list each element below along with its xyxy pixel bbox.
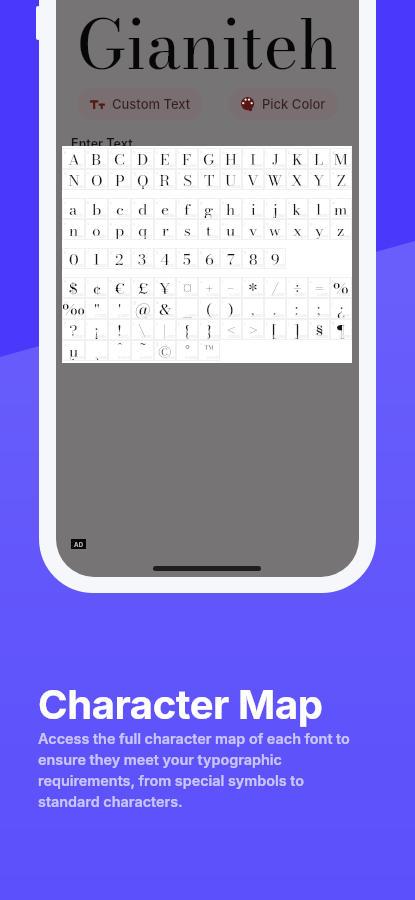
button[interactable]: f	[176, 198, 198, 219]
button[interactable]: b	[85, 198, 108, 219]
button[interactable]: ˜	[131, 340, 154, 361]
button[interactable]: _	[176, 298, 198, 319]
button[interactable]: X	[286, 169, 308, 190]
button[interactable]: ¤	[176, 277, 198, 298]
button[interactable]: 8	[242, 248, 264, 269]
button[interactable]: ,	[242, 298, 264, 319]
button[interactable]: ¢	[85, 277, 108, 298]
button[interactable]: €	[108, 277, 131, 298]
button[interactable]: Custom Text	[77, 88, 203, 120]
button[interactable]: Advertisement	[71, 539, 86, 549]
button[interactable]: s	[176, 219, 198, 240]
button[interactable]: ˆ	[108, 340, 131, 361]
button[interactable]: n	[62, 219, 85, 240]
button[interactable]: v	[242, 219, 264, 240]
button[interactable]: &	[154, 298, 176, 319]
button[interactable]: °	[176, 340, 198, 361]
button[interactable]: ™	[198, 340, 220, 361]
button[interactable]: ÷	[286, 277, 308, 298]
button[interactable]: q	[131, 219, 154, 240]
button[interactable]: ¡	[85, 319, 108, 340]
button[interactable]: 3	[131, 248, 154, 269]
button[interactable]: 5	[176, 248, 198, 269]
button[interactable]: '	[108, 298, 131, 319]
button[interactable]: ¿	[330, 298, 352, 319]
button[interactable]: t	[198, 219, 220, 240]
button[interactable]: $	[62, 277, 85, 298]
button[interactable]: @	[131, 298, 154, 319]
button[interactable]: >	[242, 319, 264, 340]
button[interactable]: £	[131, 277, 154, 298]
button[interactable]: I	[242, 148, 264, 169]
button[interactable]: }	[198, 319, 220, 340]
button[interactable]: "	[85, 298, 108, 319]
button[interactable]: j	[264, 198, 286, 219]
button[interactable]: C	[108, 148, 131, 169]
button[interactable]: )	[220, 298, 242, 319]
button[interactable]: !	[108, 319, 131, 340]
button[interactable]: ¶	[330, 319, 352, 340]
button[interactable]: e	[154, 198, 176, 219]
button[interactable]: (	[198, 298, 220, 319]
button[interactable]: l	[308, 198, 330, 219]
button[interactable]: K	[286, 148, 308, 169]
button[interactable]: 7	[220, 248, 242, 269]
button[interactable]: w	[264, 219, 286, 240]
button[interactable]: h	[220, 198, 242, 219]
button[interactable]: u	[220, 219, 242, 240]
button[interactable]: L	[308, 148, 330, 169]
button[interactable]: =	[308, 277, 330, 298]
button[interactable]: E	[154, 148, 176, 169]
button[interactable]: \	[131, 319, 154, 340]
button[interactable]: T	[198, 169, 220, 190]
button[interactable]: p	[108, 219, 131, 240]
button[interactable]: +	[198, 277, 220, 298]
button[interactable]: U	[220, 169, 242, 190]
button[interactable]: ©	[154, 340, 176, 361]
button[interactable]: ;	[308, 298, 330, 319]
button[interactable]: [	[264, 319, 286, 340]
button[interactable]: µ	[62, 340, 85, 361]
button[interactable]: Pick Color	[228, 88, 338, 120]
button[interactable]: H	[220, 148, 242, 169]
button[interactable]: N	[62, 169, 85, 190]
button[interactable]: §	[308, 319, 330, 340]
button[interactable]: r	[154, 219, 176, 240]
button[interactable]: D	[131, 148, 154, 169]
button[interactable]: 2	[108, 248, 131, 269]
button[interactable]: z	[330, 219, 352, 240]
button[interactable]: 0	[62, 248, 85, 269]
button[interactable]: d	[131, 198, 154, 219]
button[interactable]: |	[154, 319, 176, 340]
button[interactable]: −	[220, 277, 242, 298]
button[interactable]: Y	[308, 169, 330, 190]
button[interactable]: R	[154, 169, 176, 190]
button[interactable]: x	[286, 219, 308, 240]
button[interactable]: k	[286, 198, 308, 219]
button[interactable]: g	[198, 198, 220, 219]
button[interactable]: y	[308, 219, 330, 240]
button[interactable]: Z	[330, 169, 352, 190]
button[interactable]: ?	[62, 319, 85, 340]
button[interactable]: <	[220, 319, 242, 340]
button[interactable]: /	[264, 277, 286, 298]
button[interactable]: ¸	[85, 340, 108, 361]
button[interactable]: .	[264, 298, 286, 319]
button[interactable]: A	[62, 148, 85, 169]
button[interactable]: m	[330, 198, 352, 219]
button[interactable]: M	[330, 148, 352, 169]
button[interactable]: 4	[154, 248, 176, 269]
button[interactable]: V	[242, 169, 264, 190]
button[interactable]: o	[85, 219, 108, 240]
button[interactable]: i	[242, 198, 264, 219]
button[interactable]: G	[198, 148, 220, 169]
button[interactable]: W	[264, 169, 286, 190]
button[interactable]: F	[176, 148, 198, 169]
button[interactable]: O	[85, 169, 108, 190]
button[interactable]: ]	[286, 319, 308, 340]
button[interactable]: a	[62, 198, 85, 219]
button[interactable]: P	[108, 169, 131, 190]
button[interactable]: Q	[131, 169, 154, 190]
button[interactable]: 1	[85, 248, 108, 269]
button[interactable]: *	[242, 277, 264, 298]
